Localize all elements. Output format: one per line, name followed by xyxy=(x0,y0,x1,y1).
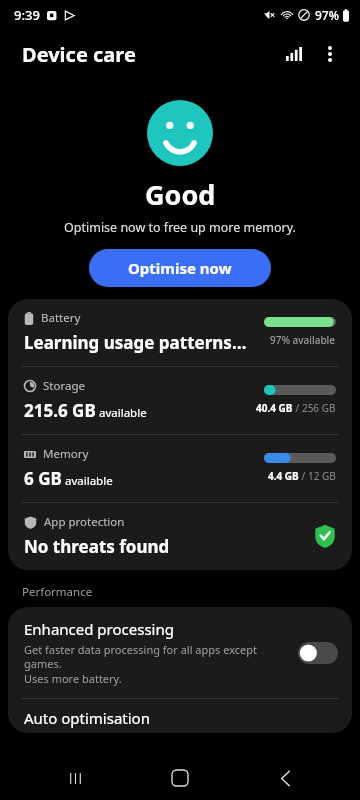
staticText: Battery xyxy=(41,310,81,326)
button[interactable]: Enhanced processing xyxy=(8,607,352,698)
staticText: Enhanced processing xyxy=(24,619,174,639)
button[interactable]: Enhanced processing toggle xyxy=(298,642,338,664)
button[interactable]: Optimise now xyxy=(89,249,271,287)
staticText: 9:39 xyxy=(14,6,40,24)
staticText: / 12 GB xyxy=(299,469,336,483)
staticText: Optimise now to free up more memory. xyxy=(64,219,296,236)
staticText: available xyxy=(62,473,113,489)
button[interactable]: Usage statistics xyxy=(276,36,312,72)
button[interactable]: Auto optimisation xyxy=(8,699,352,733)
staticText: Optimise now xyxy=(128,258,232,278)
button[interactable]: Memory xyxy=(8,435,352,502)
staticText: Uses more battery. xyxy=(24,671,122,686)
button[interactable]: Storage xyxy=(8,367,352,434)
staticText: Get faster data processing for all apps … xyxy=(24,642,290,671)
staticText: Storage xyxy=(43,378,85,394)
button[interactable]: More options xyxy=(312,36,348,72)
button[interactable]: Recent apps xyxy=(45,756,105,800)
staticText: Good xyxy=(145,176,216,213)
staticText: Performance xyxy=(22,584,93,600)
staticText: 215.6 GB xyxy=(24,399,96,422)
staticText: App protection xyxy=(44,514,125,530)
staticText: Auto optimisation xyxy=(24,708,150,728)
staticText: 97% available xyxy=(270,333,336,347)
staticText: / 256 GB xyxy=(293,401,336,415)
staticText: 40.4 GB xyxy=(256,401,293,415)
button[interactable]: Home xyxy=(150,756,210,800)
button[interactable]: Back xyxy=(255,756,315,800)
staticText: No threats found xyxy=(24,535,170,558)
staticText: 4.4 GB xyxy=(268,469,299,483)
staticText: 97% xyxy=(315,7,339,23)
staticText: Memory xyxy=(43,446,89,462)
staticText: Learning usage patterns… xyxy=(24,331,247,354)
staticText: 6 GB xyxy=(24,467,62,490)
staticText: available xyxy=(96,405,147,421)
staticText: Device care xyxy=(22,41,136,68)
button[interactable]: App protection xyxy=(8,503,352,570)
button[interactable]: Battery xyxy=(8,299,352,366)
